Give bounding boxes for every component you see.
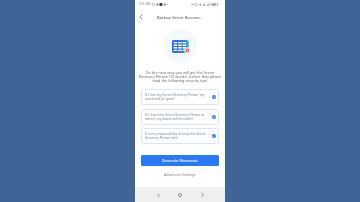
button[interactable]: It is my responsibility to keep the Secr… [141,128,219,144]
button[interactable]: Generate Mnemonic [141,155,219,166]
staticText: Backup Secret Recover... [157,15,203,20]
staticText: If I lose my Secret Recovery Phrase, my … [145,93,210,101]
button[interactable]: Back [135,10,147,24]
staticText: If I share my Secret Recovery Phrase to … [145,113,210,121]
staticText: It is my responsibility to keep the Secr… [145,132,210,140]
button[interactable]: Recent apps [153,190,163,200]
button[interactable]: If I share my Secret Recovery Phrase to … [141,109,219,125]
button[interactable]: Home [175,190,185,200]
button[interactable]: If I lose my Secret Recovery Phrase, my … [141,89,219,105]
staticText: 10:41 AM [139,2,151,6]
staticText: Generate Mnemonic [162,158,198,163]
button[interactable]: Advanced Settings [164,172,196,177]
staticText: On the next step you will get the Secret… [138,70,222,84]
button[interactable]: Back [198,190,208,200]
